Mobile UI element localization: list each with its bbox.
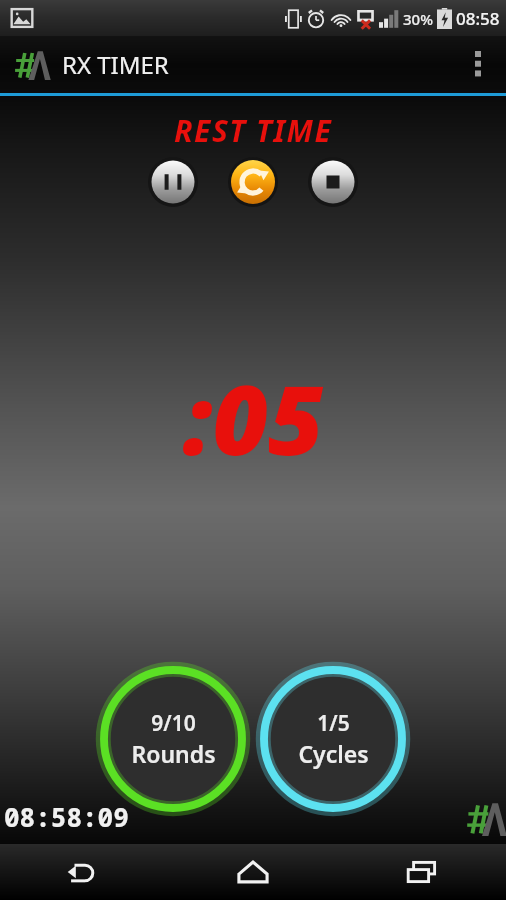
staticText: Cycles bbox=[298, 738, 369, 769]
staticText: Rounds bbox=[131, 738, 216, 769]
button[interactable]: 9/10 bbox=[98, 664, 248, 814]
staticText: 9/10 bbox=[151, 709, 196, 738]
staticText: 08:58 bbox=[456, 7, 500, 30]
staticText: REST TIME bbox=[174, 110, 333, 151]
staticText: 08:58:09 bbox=[4, 799, 129, 834]
button[interactable]: Pause bbox=[148, 157, 198, 207]
staticText: :05 bbox=[183, 352, 324, 483]
staticText: RX TIMER bbox=[62, 48, 169, 81]
button[interactable]: Recent apps bbox=[337, 844, 506, 900]
button[interactable]: 1/5 bbox=[258, 664, 408, 814]
staticText: 30% bbox=[403, 9, 433, 29]
staticText: 1/5 bbox=[317, 709, 350, 738]
button[interactable]: Reset bbox=[228, 157, 278, 207]
button[interactable]: Stop bbox=[308, 157, 358, 207]
button[interactable]: Home bbox=[168, 844, 337, 900]
button[interactable]: More options bbox=[450, 36, 506, 93]
button[interactable]: Back bbox=[0, 844, 168, 900]
